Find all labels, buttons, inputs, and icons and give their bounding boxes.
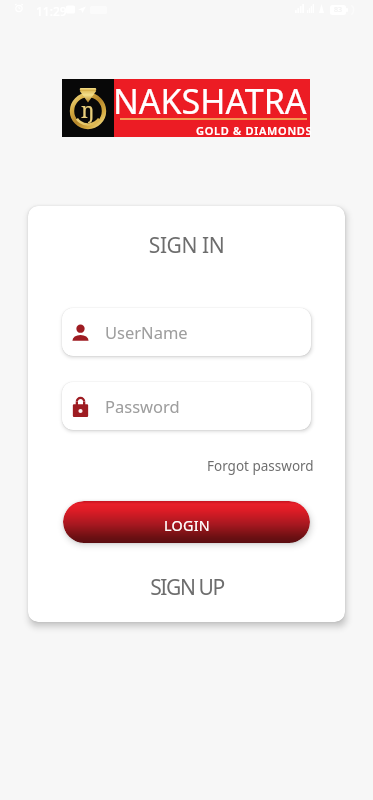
staticText: SIGN IN xyxy=(0,231,373,260)
staticText: UserName xyxy=(105,321,188,343)
button[interactable]: Forgot password xyxy=(206,456,315,476)
staticText: 83 xyxy=(334,5,343,15)
staticText: SIGN UP xyxy=(150,573,224,602)
staticText: GOLD & DIAMONDS xyxy=(196,123,313,138)
staticText: LOGIN xyxy=(164,516,210,535)
button[interactable]: SIGN UP xyxy=(141,571,232,603)
staticText: NAKSHATRA xyxy=(113,78,307,124)
staticText: Forgot password xyxy=(207,457,314,475)
staticText: Password xyxy=(105,395,180,417)
button[interactable]: UserName xyxy=(62,308,311,356)
button[interactable]: Password xyxy=(62,382,311,430)
staticText: ŋ xyxy=(81,96,95,125)
button[interactable]: LOGIN xyxy=(63,501,310,543)
